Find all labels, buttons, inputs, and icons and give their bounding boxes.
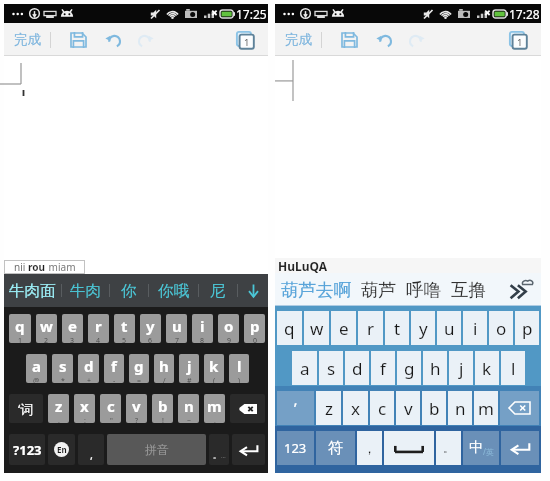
button[interactable]: k <box>475 351 499 385</box>
button[interactable]: ʻ词 <box>9 394 43 423</box>
button[interactable]: 符 <box>316 431 355 465</box>
button[interactable]: v <box>126 394 147 423</box>
button[interactable]: 互撸 <box>451 273 486 306</box>
button[interactable]: r <box>358 311 383 345</box>
button[interactable]: n <box>448 391 472 425</box>
staticText: w <box>40 316 53 336</box>
staticText: u <box>444 317 455 340</box>
staticText: z <box>55 396 63 416</box>
button[interactable]: 你 <box>121 274 137 307</box>
button[interactable]: 尼 <box>210 274 226 307</box>
staticText: ( <box>213 376 216 383</box>
staticText: 完成 <box>285 31 312 48</box>
button[interactable]: ?123 <box>9 434 45 465</box>
button[interactable]: c <box>370 391 394 425</box>
button[interactable]: d <box>345 351 369 385</box>
button[interactable]: i <box>192 314 213 343</box>
button[interactable]: Undo <box>100 24 125 56</box>
button[interactable]: g <box>397 351 421 385</box>
button[interactable]: 葫芦去啊 <box>281 273 351 306</box>
button[interactable]: 中 <box>463 431 499 465</box>
button[interactable]: x <box>74 394 95 423</box>
button[interactable]: s <box>319 351 343 385</box>
button[interactable]: z <box>48 394 69 423</box>
staticText: 。 <box>213 450 221 460</box>
button[interactable]: q <box>9 314 31 343</box>
button[interactable]: s <box>52 354 73 383</box>
button[interactable]: h <box>154 354 174 383</box>
button[interactable]: 。 <box>436 431 461 465</box>
button[interactable]: Enter <box>501 431 539 465</box>
button[interactable]: e <box>331 311 356 345</box>
button[interactable]: Space <box>384 431 434 465</box>
button[interactable]: Pages <box>230 24 260 56</box>
button[interactable]: 完成 <box>14 23 41 56</box>
button[interactable]: 牛肉面 <box>9 274 56 307</box>
button[interactable]: o <box>218 314 239 343</box>
button[interactable]: 你哦 <box>158 274 189 307</box>
button[interactable]: Save <box>337 24 362 56</box>
button[interactable]: 123 <box>277 431 314 465</box>
button[interactable]: v <box>396 391 420 425</box>
button[interactable]: x <box>343 391 368 425</box>
staticText: 尼 <box>210 281 226 301</box>
button[interactable]: p <box>515 311 539 345</box>
button[interactable]: e <box>62 314 83 343</box>
button[interactable]: l <box>501 351 525 385</box>
button[interactable]: t <box>385 311 409 345</box>
button[interactable]: 。 <box>209 434 229 465</box>
button[interactable]: a <box>26 354 47 383</box>
button[interactable]: i <box>463 311 487 345</box>
button[interactable]: g <box>129 354 149 383</box>
button[interactable]: More candidates <box>501 273 541 306</box>
button[interactable]: w <box>36 314 57 343</box>
button[interactable]: Redo <box>405 24 430 56</box>
button[interactable]: Enter <box>232 434 265 465</box>
button[interactable]: y <box>140 314 161 343</box>
button[interactable]: Redo <box>134 24 159 56</box>
button[interactable]: q <box>277 311 302 345</box>
button[interactable]: z <box>316 391 341 425</box>
button[interactable]: u <box>437 311 461 345</box>
staticText: * <box>61 376 65 383</box>
button[interactable]: h <box>423 351 447 385</box>
button[interactable]: 葫芦 <box>361 273 396 306</box>
button[interactable]: Pages <box>503 24 533 56</box>
button[interactable]: j <box>179 354 199 383</box>
button[interactable]: d <box>78 354 99 383</box>
button[interactable]: y <box>411 311 435 345</box>
button[interactable]: j <box>449 351 473 385</box>
button[interactable]: , <box>78 434 104 465</box>
button[interactable]: l <box>229 354 249 383</box>
button[interactable]: More candidates <box>238 274 268 307</box>
button[interactable]: ， <box>357 431 382 465</box>
button[interactable]: 呼噜 <box>406 273 441 306</box>
staticText: u <box>172 316 182 336</box>
button[interactable]: Delete <box>230 394 265 423</box>
button[interactable]: ʼ <box>277 391 314 425</box>
button[interactable]: b <box>422 391 446 425</box>
button[interactable]: u <box>166 314 187 343</box>
button[interactable]: m <box>204 394 225 423</box>
button[interactable]: o <box>489 311 513 345</box>
button[interactable]: n <box>178 394 199 423</box>
button[interactable]: w <box>304 311 329 345</box>
button[interactable]: b <box>152 394 173 423</box>
button[interactable]: p <box>244 314 265 343</box>
button[interactable]: f <box>104 354 124 383</box>
button[interactable]: Space <box>107 434 206 465</box>
button[interactable]: k <box>204 354 224 383</box>
button[interactable]: Undo <box>371 24 396 56</box>
button[interactable]: f <box>371 351 395 385</box>
button[interactable]: 牛肉 <box>70 274 101 307</box>
button[interactable]: m <box>474 391 498 425</box>
button[interactable]: Save <box>66 24 91 56</box>
button[interactable]: a <box>292 351 317 385</box>
button[interactable]: r <box>88 314 109 343</box>
button[interactable]: Delete <box>500 391 539 425</box>
button[interactable]: Switch language <box>48 434 75 465</box>
staticText: t <box>121 316 128 336</box>
button[interactable]: 完成 <box>285 23 312 56</box>
button[interactable]: t <box>114 314 135 343</box>
button[interactable]: c <box>100 394 121 423</box>
